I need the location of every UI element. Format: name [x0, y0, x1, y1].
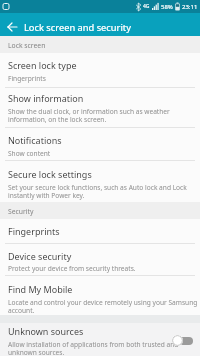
button[interactable]: Device security	[0, 244, 200, 275]
button[interactable]: Find My Mobile	[0, 276, 200, 315]
staticText: Fingerprints	[8, 225, 60, 237]
staticText: Set your secure lock functions, such as …	[8, 183, 187, 200]
staticText: Show information	[8, 92, 84, 104]
button[interactable]: Unknown sources	[0, 323, 200, 356]
button[interactable]	[6, 18, 20, 32]
staticText: Unknown sources	[8, 325, 84, 337]
button[interactable]: Notifications	[0, 128, 200, 160]
button[interactable]: Show information	[0, 88, 200, 127]
staticText: Fingerprints	[8, 74, 46, 83]
staticText: 4G	[143, 3, 150, 10]
staticText: Allow installation of applications from …	[8, 340, 179, 356]
staticText: Security	[8, 207, 34, 216]
button[interactable]	[172, 335, 193, 346]
staticText: Locate and control your device remotely …	[8, 298, 198, 315]
staticText: Lock screen and security	[24, 21, 131, 34]
staticText: Notifications	[8, 134, 62, 146]
button[interactable]: Screen lock type	[0, 53, 200, 87]
staticText: Show content	[8, 149, 51, 158]
button[interactable]: Fingerprints	[0, 219, 200, 243]
staticText: Show the dual clock, or information such…	[8, 107, 170, 124]
staticText: Secure lock settings	[8, 168, 92, 180]
staticText: Protect your device from security threat…	[8, 264, 136, 273]
staticText: Screen lock type	[8, 59, 77, 71]
staticText: Device security	[8, 250, 72, 262]
staticText: Find My Mobile	[8, 283, 73, 295]
staticText: 58%	[161, 3, 173, 11]
button[interactable]: Secure lock settings	[0, 161, 200, 202]
staticText: 23:11	[182, 3, 198, 11]
staticText: Lock screen	[8, 41, 46, 50]
